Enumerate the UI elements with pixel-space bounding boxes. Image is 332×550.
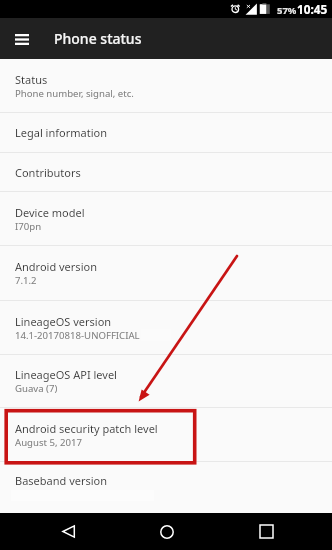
staticText: August 5, 2017 <box>15 436 82 449</box>
staticText: 7.1.2 <box>15 274 37 287</box>
button[interactable]: Android version <box>0 246 332 301</box>
staticText: LineageOS API level <box>15 367 117 382</box>
button[interactable]: Contributors <box>0 153 332 192</box>
button[interactable]: Legal information <box>0 113 332 153</box>
button[interactable]: Back <box>40 513 96 550</box>
button[interactable]: LineageOS version <box>0 301 332 355</box>
button[interactable]: Home <box>139 513 195 550</box>
staticText: Android security patch level <box>15 421 158 436</box>
staticText: Phone status <box>54 29 142 48</box>
staticText: I70pn <box>15 220 42 233</box>
button[interactable]: Baseband version <box>0 462 332 513</box>
staticText: Baseband version <box>15 473 108 488</box>
staticText: Device model <box>15 205 85 220</box>
staticText: Contributors <box>15 165 81 180</box>
button[interactable]: Recent apps <box>238 513 294 550</box>
staticText: 10:45 <box>297 1 328 17</box>
staticText: Status <box>15 72 48 87</box>
staticText: LineageOS version <box>15 314 112 329</box>
staticText: Guava (7) <box>15 382 58 395</box>
staticText: Legal information <box>15 125 107 140</box>
button[interactable]: Status <box>0 59 332 113</box>
staticText: 14.1-20170818-UNOFFICIAL <box>15 329 140 342</box>
button[interactable]: Device model <box>0 192 332 246</box>
button[interactable]: Android security patch level <box>0 408 332 462</box>
staticText: 57% <box>277 4 297 17</box>
staticText: Android version <box>15 259 97 274</box>
button[interactable]: LineageOS API level <box>0 355 332 408</box>
button[interactable]: Open navigation drawer <box>8 25 36 53</box>
staticText: Phone number, signal, etc. <box>15 87 134 100</box>
